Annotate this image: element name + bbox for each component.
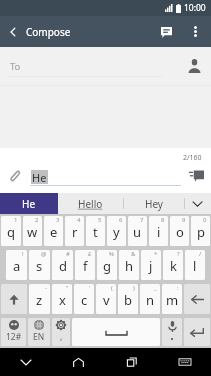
- staticText: l: [193, 257, 197, 275]
- button[interactable]: Language: [28, 318, 50, 346]
- staticText: e: [50, 223, 58, 241]
- button[interactable]: Hey: [123, 193, 184, 214]
- button[interactable]: j: [141, 250, 161, 280]
- staticText: -: [45, 284, 47, 292]
- button[interactable]: More suggestions: [184, 193, 211, 214]
- button[interactable]: Back: [0, 16, 26, 47]
- staticText: g: [103, 257, 111, 275]
- button[interactable]: u: [128, 216, 147, 246]
- staticText: EN: [33, 331, 45, 343]
- staticText: 12#: [6, 331, 22, 343]
- staticText: ): [133, 284, 135, 292]
- button[interactable]: g: [97, 250, 117, 280]
- staticText: t: [93, 223, 98, 241]
- staticText: v: [103, 291, 110, 309]
- button[interactable]: v: [96, 284, 116, 314]
- staticText: Hey: [145, 197, 163, 211]
- staticText: *: [154, 250, 158, 258]
- button[interactable]: o: [170, 216, 189, 246]
- staticText: w: [27, 223, 38, 241]
- button[interactable]: k: [163, 250, 183, 280]
- staticText: £: [88, 250, 92, 258]
- staticText: o: [176, 223, 184, 241]
- staticText: b: [124, 291, 132, 309]
- staticText: 6: [119, 216, 123, 224]
- button[interactable]: x: [52, 284, 72, 314]
- staticText: 4: [77, 216, 81, 224]
- staticText: 2/160: [183, 153, 202, 163]
- button[interactable]: b: [118, 284, 138, 314]
- button[interactable]: c: [74, 284, 94, 314]
- button[interactable]: More options: [185, 16, 205, 47]
- button[interactable]: m: [162, 284, 182, 314]
- staticText: 5: [98, 216, 102, 224]
- staticText: ,: [60, 331, 63, 343]
- button[interactable]: Hello: [58, 193, 123, 214]
- button[interactable]: Recent apps: [105, 348, 158, 376]
- button[interactable]: y: [107, 216, 126, 246]
- staticText: @: [41, 250, 47, 258]
- button[interactable]: Attach: [9, 170, 20, 181]
- staticText: c: [81, 291, 88, 309]
- button[interactable]: f: [75, 250, 95, 280]
- staticText: 7: [140, 216, 144, 224]
- button[interactable]: w: [23, 216, 42, 246]
- button[interactable]: He: [0, 193, 58, 214]
- button[interactable]: z: [29, 284, 50, 314]
- staticText: 1: [14, 216, 18, 224]
- staticText: i: [157, 223, 161, 241]
- button[interactable]: Symbols: [1, 318, 26, 346]
- button[interactable]: i: [149, 216, 168, 246]
- button[interactable]: Send: [187, 166, 205, 184]
- button[interactable]: Back: [0, 348, 52, 376]
- staticText: !: [22, 250, 24, 258]
- staticText: u: [133, 223, 142, 241]
- staticText: &: [131, 250, 136, 258]
- button[interactable]: t: [86, 216, 105, 246]
- staticText: To: [10, 60, 21, 73]
- button[interactable]: h: [119, 250, 139, 280]
- button[interactable]: a: [6, 250, 27, 280]
- staticText: _: [154, 284, 157, 292]
- staticText: #: [66, 250, 70, 258]
- button[interactable]: d: [52, 250, 73, 280]
- staticText: a: [13, 257, 21, 275]
- button[interactable]: Home: [52, 348, 105, 376]
- button[interactable]: q: [1, 216, 21, 246]
- staticText: 2: [35, 216, 39, 224]
- button[interactable]: Backspace: [184, 284, 210, 314]
- button[interactable]: Voice input: [162, 318, 182, 346]
- staticText: ': [89, 284, 91, 292]
- staticText: He: [32, 170, 47, 184]
- button[interactable]: Space: [72, 318, 160, 346]
- staticText: m: [166, 291, 179, 309]
- staticText: p: [197, 223, 205, 241]
- staticText: :: [177, 284, 179, 292]
- button[interactable]: Enter: [184, 318, 210, 346]
- staticText: n: [146, 291, 155, 309]
- staticText: (: [111, 284, 113, 292]
- staticText: z: [36, 291, 43, 309]
- staticText: ?: [177, 250, 180, 258]
- staticText: y: [113, 223, 120, 241]
- button[interactable]: Add contact: [188, 59, 201, 73]
- button[interactable]: s: [29, 250, 50, 280]
- staticText: ": [66, 284, 69, 292]
- button[interactable]: Shift: [1, 284, 27, 314]
- staticText: 9: [182, 216, 186, 224]
- staticText: q: [7, 223, 15, 241]
- button[interactable]: l: [185, 250, 205, 280]
- button[interactable]: r: [65, 216, 84, 246]
- staticText: %: [109, 250, 114, 258]
- button[interactable]: Keyboard: [158, 348, 211, 376]
- staticText: f: [83, 257, 88, 275]
- button[interactable]: p: [191, 216, 210, 246]
- staticText: Compose: [26, 25, 71, 39]
- button[interactable]: e: [44, 216, 63, 246]
- button[interactable]: Messages: [154, 20, 178, 44]
- staticText: j: [149, 257, 153, 275]
- button[interactable]: Settings: [52, 318, 70, 346]
- staticText: h: [125, 257, 134, 275]
- staticText: 3: [56, 216, 60, 224]
- button[interactable]: n: [140, 284, 160, 314]
